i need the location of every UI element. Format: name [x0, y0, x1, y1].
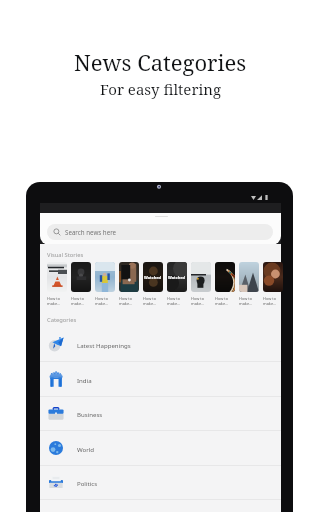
- staticText: How to make...: [95, 296, 109, 306]
- staticText: How to make...: [263, 296, 277, 306]
- staticText: How to make...: [215, 296, 229, 306]
- staticText: How to make...: [191, 296, 205, 306]
- button[interactable]: World: [40, 431, 281, 466]
- button[interactable]: Politics: [40, 465, 281, 500]
- staticText: How to make...: [167, 296, 181, 306]
- button[interactable]: How to make...: [71, 262, 95, 306]
- button[interactable]: Latest Happenings: [40, 327, 281, 362]
- staticText: For easy filtering: [100, 79, 221, 99]
- button[interactable]: How to make...: [215, 262, 239, 306]
- staticText: Latest Happenings: [77, 341, 131, 349]
- staticText: World: [77, 445, 95, 453]
- button[interactable]: How to make...: [119, 262, 143, 306]
- staticText: News Categories: [74, 47, 247, 77]
- button[interactable]: How to make...: [239, 262, 263, 306]
- button[interactable]: How to make...: [191, 262, 215, 306]
- staticText: Search news here: [65, 228, 117, 236]
- staticText: How to make...: [239, 296, 253, 306]
- staticText: How to make...: [47, 296, 61, 306]
- staticText: How to make...: [71, 296, 85, 306]
- staticText: Watched: [144, 275, 162, 280]
- button[interactable]: Business: [40, 396, 281, 431]
- staticText: Politics: [77, 479, 98, 487]
- button[interactable]: Search news here: [47, 224, 273, 240]
- button[interactable]: Watched: [143, 262, 167, 306]
- button[interactable]: How to make...: [47, 262, 71, 306]
- staticText: How to make...: [143, 296, 157, 306]
- button[interactable]: India: [40, 362, 281, 397]
- staticText: Business: [77, 410, 103, 418]
- button[interactable]: How to make...: [263, 262, 287, 306]
- button[interactable]: Watched: [167, 262, 191, 306]
- button[interactable]: How to make...: [95, 262, 119, 306]
- staticText: Watched: [168, 275, 186, 280]
- staticText: Categories: [47, 316, 77, 324]
- staticText: How to make...: [119, 296, 133, 306]
- staticText: Visual Stories: [47, 251, 84, 259]
- staticText: India: [77, 376, 92, 384]
